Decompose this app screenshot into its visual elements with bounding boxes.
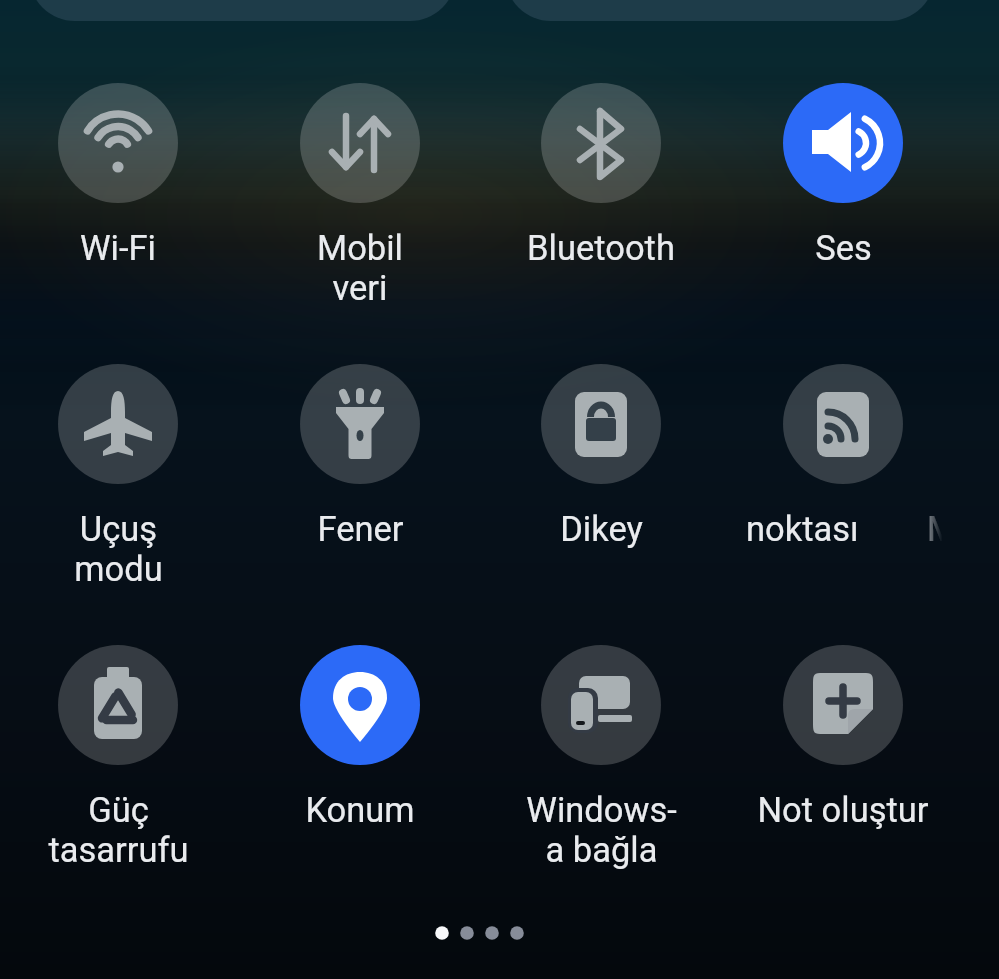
staticText: Fener bbox=[317, 509, 404, 549]
button[interactable]: Not oluştur bbox=[723, 697, 963, 887]
button[interactable]: Konum bbox=[240, 697, 480, 887]
staticText: noktası Mobil bbox=[746, 509, 986, 549]
button[interactable]: Mobil veri bbox=[240, 135, 480, 325]
button[interactable]: Windows- a bağla bbox=[481, 697, 721, 887]
button[interactable]: Bluetooth bbox=[481, 135, 721, 325]
button[interactable]: Uçuş modu bbox=[0, 416, 238, 606]
staticText: Uçuş modu bbox=[74, 509, 163, 589]
staticText: Mobil veri bbox=[317, 228, 403, 308]
staticText: Ses bbox=[815, 228, 872, 268]
staticText: Dikey bbox=[560, 509, 643, 549]
button[interactable]: Güç tasarrufu bbox=[0, 697, 238, 887]
button[interactable]: Ses bbox=[723, 135, 963, 325]
staticText: Windows- a bağla bbox=[526, 790, 677, 870]
button[interactable]: Mobil erişim noktası bbox=[723, 416, 963, 606]
staticText: Güç tasarrufu bbox=[48, 790, 189, 870]
staticText: Bluetooth bbox=[527, 228, 675, 268]
staticText: Wi-Fi bbox=[80, 228, 156, 268]
button[interactable]: Fener bbox=[240, 416, 480, 606]
button[interactable]: Wi-Fi bbox=[0, 135, 238, 325]
button[interactable]: Dikey bbox=[481, 416, 721, 606]
staticText: Konum bbox=[305, 790, 415, 830]
staticText: Not oluştur bbox=[757, 790, 929, 830]
